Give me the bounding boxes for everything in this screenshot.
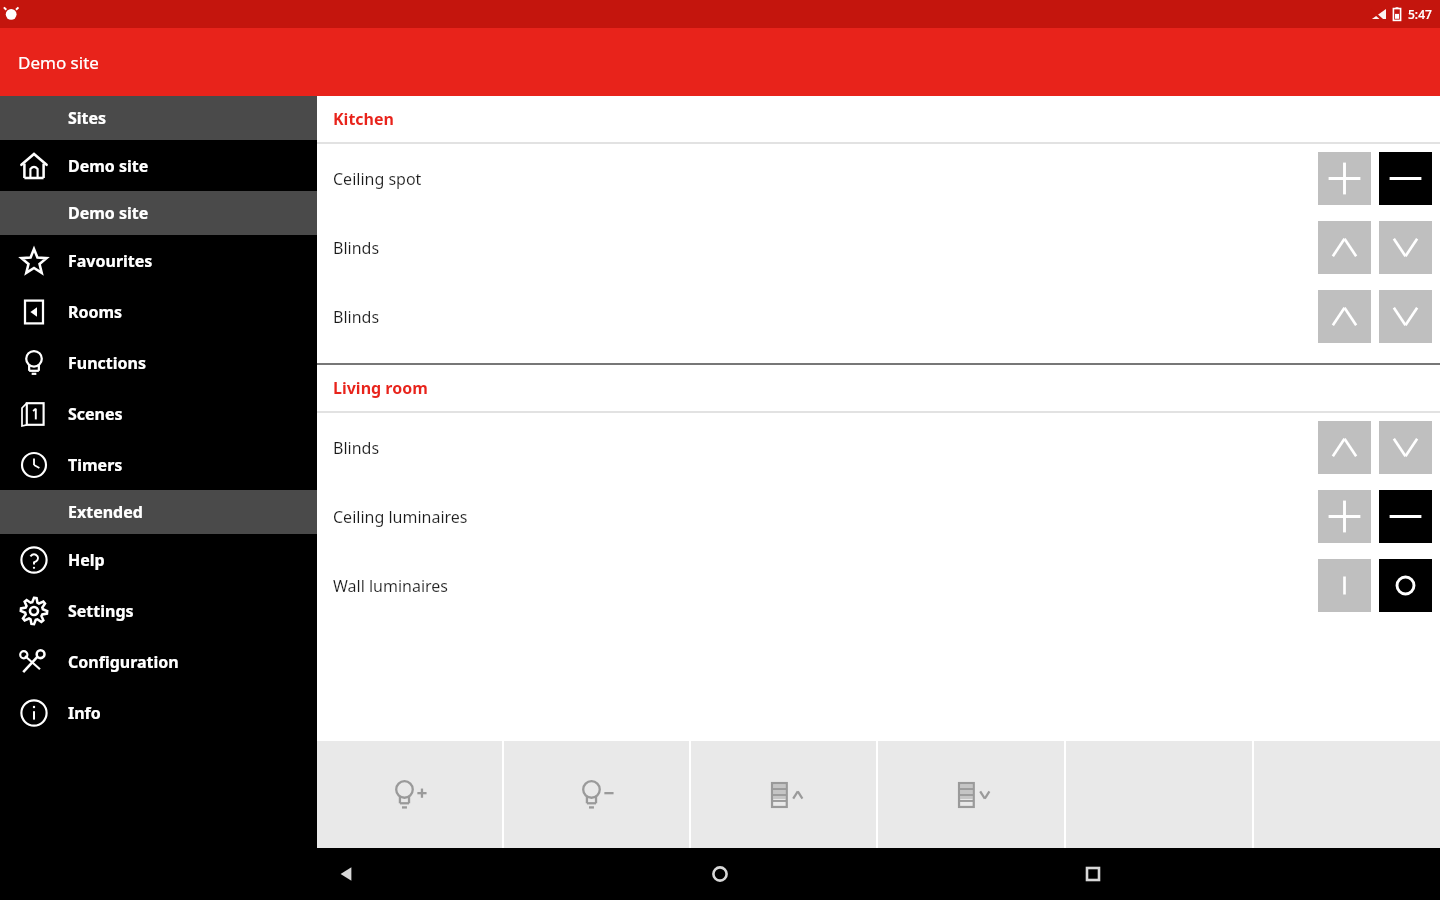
button[interactable]: Info (0, 687, 317, 738)
button[interactable]: Blinds (317, 213, 1440, 282)
staticText: Living room (333, 377, 428, 399)
staticText: Configuration (68, 651, 179, 673)
button[interactable]: Functions (0, 337, 317, 388)
staticText: Settings (68, 600, 134, 622)
button[interactable]: Recents (1067, 848, 1119, 900)
button[interactable]: Rooms (0, 286, 317, 337)
staticText: Functions (68, 352, 147, 374)
button[interactable]: Settings (0, 585, 317, 636)
staticText: Help (68, 549, 105, 571)
staticText: Timers (68, 454, 123, 476)
button[interactable]: Decrease (1379, 152, 1432, 205)
staticText: Wall luminaires (333, 575, 1318, 597)
button[interactable]: Raise blinds (1318, 221, 1371, 274)
button[interactable]: Raise blinds (1318, 290, 1371, 343)
button[interactable]: Lower all blinds (878, 741, 1064, 848)
button[interactable]: Lower blinds (1379, 421, 1432, 474)
button[interactable]: Raise blinds (1318, 421, 1371, 474)
staticText: Ceiling luminaires (333, 506, 1318, 528)
staticText: Favourites (68, 250, 153, 272)
button[interactable]: Increase (1318, 490, 1371, 543)
button[interactable]: Scenes (0, 388, 317, 439)
staticText: Extended (68, 501, 143, 523)
staticText: Demo site (68, 202, 149, 224)
staticText: Demo site (18, 51, 99, 74)
staticText: Kitchen (333, 108, 394, 130)
button[interactable]: Demo site (0, 140, 317, 191)
button[interactable]: Configuration (0, 636, 317, 687)
button[interactable]: Blinds (317, 282, 1440, 351)
button[interactable]: Blinds (317, 413, 1440, 482)
button[interactable]: Kitchen (317, 96, 1440, 142)
staticText: Rooms (68, 301, 123, 323)
button[interactable]: Living room (317, 365, 1440, 411)
button[interactable]: Lower blinds (1379, 290, 1432, 343)
button[interactable]: Help (0, 534, 317, 585)
staticText: Blinds (333, 437, 1318, 459)
button[interactable]: Increase (1318, 152, 1371, 205)
button[interactable]: Brighten lights (317, 741, 502, 848)
button[interactable]: Lower blinds (1379, 221, 1432, 274)
staticText: Blinds (333, 237, 1318, 259)
button[interactable]: Decrease (1379, 490, 1432, 543)
button[interactable]: Switch off (1379, 559, 1432, 612)
button[interactable]: Dim lights (504, 741, 689, 848)
button[interactable]: Raise all blinds (691, 741, 876, 848)
staticText: Scenes (68, 403, 123, 425)
staticText: 5:47 (1408, 6, 1432, 22)
button[interactable]: Wall luminaires (317, 551, 1440, 620)
staticText: Info (68, 702, 101, 724)
button[interactable]: Ceiling luminaires (317, 482, 1440, 551)
button[interactable]: Timers (0, 439, 317, 490)
staticText: Sites (68, 107, 107, 129)
button[interactable]: Ceiling spot (317, 144, 1440, 213)
button[interactable]: Switch on (1318, 559, 1371, 612)
button[interactable]: Home (694, 848, 746, 900)
staticText: Ceiling spot (333, 168, 1318, 190)
staticText: Demo site (68, 155, 149, 177)
button[interactable]: Favourites (0, 235, 317, 286)
staticText: Blinds (333, 306, 1318, 328)
button[interactable]: Sites (0, 96, 317, 140)
button[interactable]: Demo site (0, 191, 317, 235)
button[interactable]: Back (321, 848, 373, 900)
button[interactable]: Extended (0, 490, 317, 534)
